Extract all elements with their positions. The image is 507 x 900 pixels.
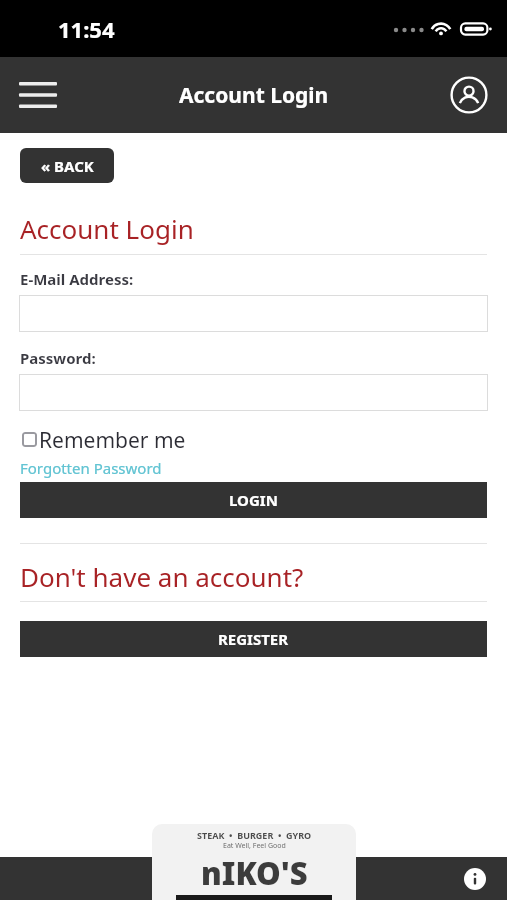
button[interactable]: Menu [8,70,68,120]
staticText: Account Login [179,81,329,110]
staticText: Account Login [20,211,194,246]
staticText: 11:54 [58,14,115,44]
button[interactable]: Forgotten Password [20,458,162,478]
staticText: E-Mail Address: [20,269,134,289]
button[interactable]: LOGIN [20,482,487,518]
staticText: Forgotten Password [20,458,162,478]
staticText: STEAK • BURGER • GYRO [197,829,312,841]
button[interactable]: Remember me [22,426,186,452]
staticText: REGISTER [218,629,289,649]
staticText: LOGIN [229,490,278,510]
button[interactable] [19,374,488,411]
staticText: Password: [20,348,96,368]
button[interactable]: Niko's logo [152,824,356,900]
staticText: Remember me [39,426,186,452]
button[interactable]: REGISTER [20,621,487,657]
staticText: Don't have an account? [20,559,304,594]
staticText: nIKO'S [201,852,308,894]
staticText: Eat Well, Feel Good [223,841,286,851]
button[interactable]: « BACK [20,148,114,183]
staticText: « BACK [41,156,94,176]
button[interactable] [19,295,488,332]
button[interactable]: Info [455,859,495,899]
button[interactable]: Account [445,71,493,119]
